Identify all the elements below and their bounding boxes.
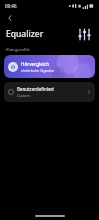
- staticText: Klangprofile: [6, 47, 30, 53]
- button[interactable]: Equalizer settings: [75, 25, 93, 43]
- staticText: Hörvergleich: [21, 61, 50, 67]
- button[interactable]: Hörvergleich: [4, 55, 95, 78]
- staticText: 09:46: [5, 3, 17, 9]
- staticText: Custom: [17, 93, 30, 98]
- staticText: Equalizer: [6, 28, 44, 40]
- button[interactable]: Back: [3, 11, 16, 24]
- button[interactable]: Benutzerdefiniert: [4, 82, 95, 102]
- staticText: Benutzerdefiniert: [17, 86, 54, 92]
- staticText: elektrische Signatur: [21, 68, 55, 73]
